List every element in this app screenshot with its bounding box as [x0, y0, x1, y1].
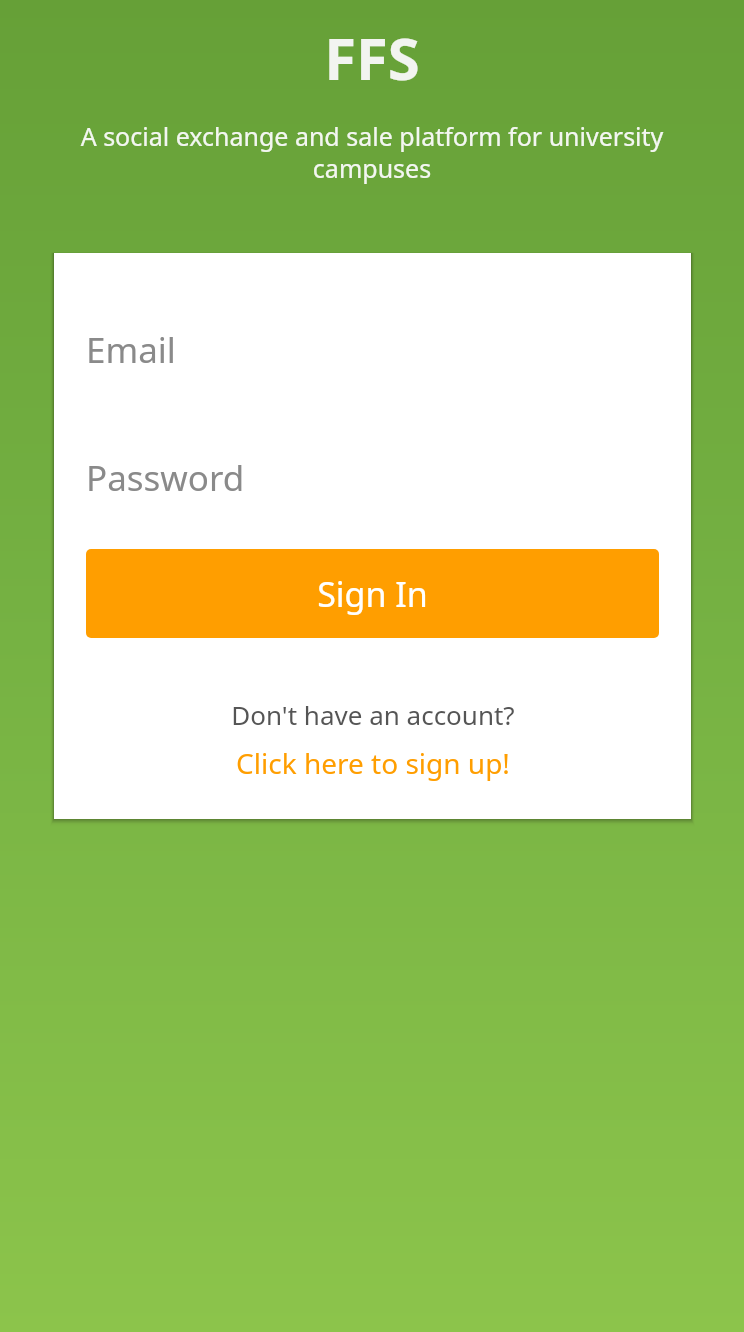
- button[interactable]: Password: [86, 439, 659, 517]
- staticText: Password: [86, 454, 245, 502]
- staticText: Don't have an account?: [231, 697, 515, 732]
- staticText: FFS: [324, 18, 420, 97]
- staticText: Sign In: [317, 571, 428, 617]
- button[interactable]: Sign In: [86, 549, 659, 638]
- button[interactable]: Click here to sign up!: [226, 742, 520, 784]
- button[interactable]: Email: [86, 311, 659, 389]
- staticText: A social exchange and sale platform for …: [30, 119, 714, 185]
- staticText: Email: [86, 326, 176, 374]
- staticText: Click here to sign up!: [236, 744, 510, 782]
